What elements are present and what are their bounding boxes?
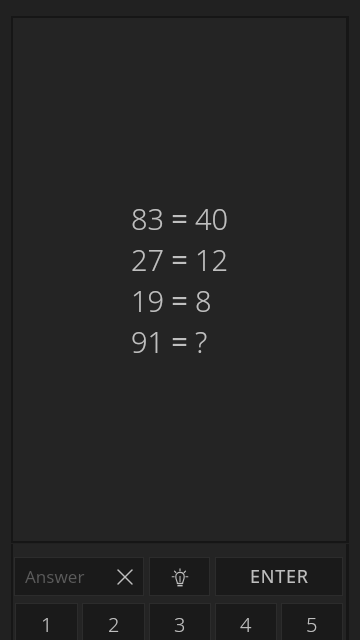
button[interactable]: 2 — [82, 603, 145, 640]
button[interactable]: Hint — [149, 557, 210, 596]
staticText: 12 — [195, 240, 229, 279]
staticText: = — [171, 198, 188, 237]
button[interactable]: 4 — [215, 603, 277, 640]
staticText: Answer — [25, 565, 106, 588]
staticText: 3 — [174, 611, 186, 638]
button[interactable]: Answer — [14, 557, 144, 596]
staticText: 40 — [195, 199, 229, 238]
staticText: 83 — [130, 199, 164, 238]
staticText: = — [171, 321, 188, 360]
staticText: = — [171, 239, 188, 278]
staticText: 5 — [306, 611, 318, 638]
staticText: 1 — [41, 611, 53, 638]
staticText: 91 — [130, 322, 164, 361]
button[interactable]: 3 — [149, 603, 211, 640]
staticText: = — [171, 280, 188, 319]
staticText: 2 — [108, 611, 120, 638]
button[interactable]: Clear answer — [106, 557, 144, 596]
staticText: ENTER — [250, 564, 309, 589]
staticText: 8 — [195, 281, 212, 320]
staticText: 27 — [130, 240, 164, 279]
staticText: ? — [195, 322, 208, 361]
staticText: 19 — [130, 281, 164, 320]
staticText: 4 — [240, 611, 252, 638]
button[interactable]: 5 — [281, 603, 343, 640]
button[interactable]: ENTER — [215, 557, 343, 596]
button[interactable]: 1 — [15, 603, 78, 640]
